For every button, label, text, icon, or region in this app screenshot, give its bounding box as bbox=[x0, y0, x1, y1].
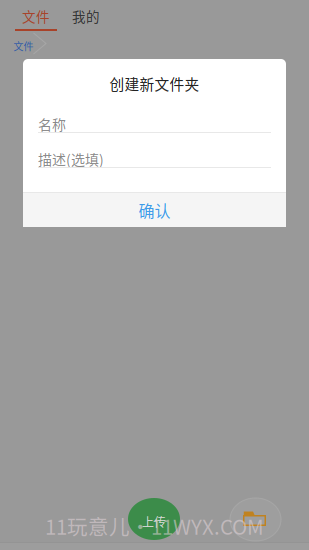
staticText: 上传 bbox=[142, 513, 166, 530]
button[interactable]: 我的 bbox=[65, 5, 107, 27]
staticText: 文件 bbox=[22, 6, 50, 26]
staticText: 描述(选填) bbox=[38, 149, 104, 169]
staticText: 11玩意儿·11WYX.COM bbox=[45, 511, 264, 541]
staticText: 文件 bbox=[13, 39, 33, 53]
button[interactable]: 文件 bbox=[15, 5, 57, 27]
button[interactable]: New folder bbox=[230, 498, 281, 541]
button[interactable]: 确认 bbox=[23, 193, 286, 227]
button[interactable]: 文件 bbox=[13, 34, 34, 57]
staticText: 创建新文件夹 bbox=[109, 73, 199, 94]
staticText: 确认 bbox=[138, 198, 170, 222]
staticText: 名称 bbox=[38, 114, 66, 134]
staticText: 我的 bbox=[72, 6, 100, 26]
button[interactable]: 上传 bbox=[128, 498, 180, 540]
